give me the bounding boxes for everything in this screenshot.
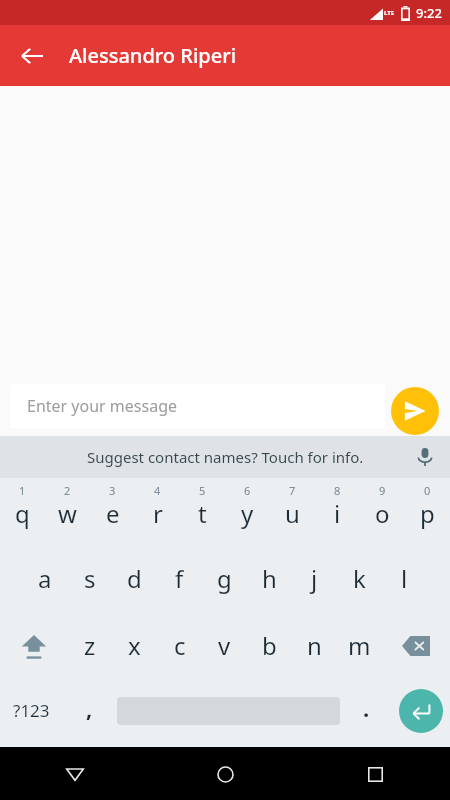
button[interactable]: , — [62, 679, 117, 742]
button[interactable]: Enter your message — [10, 384, 385, 428]
staticText: j — [311, 562, 318, 595]
button[interactable]: 4 — [135, 478, 180, 545]
staticText: b — [262, 629, 277, 662]
button[interactable]: 2 — [45, 478, 90, 545]
button[interactable]: c — [157, 612, 202, 679]
button[interactable]: ?123 — [0, 679, 62, 742]
staticText: ?123 — [13, 699, 50, 722]
button[interactable]: Send — [391, 387, 439, 435]
staticText: q — [15, 497, 30, 530]
button[interactable]: Backspace — [382, 612, 450, 679]
button[interactable]: 6 — [225, 478, 270, 545]
staticText: x — [128, 629, 141, 662]
staticText: c — [174, 629, 186, 662]
button[interactable]: h — [247, 545, 292, 612]
staticText: n — [307, 629, 322, 662]
staticText: d — [127, 562, 142, 595]
staticText: t — [198, 497, 207, 530]
button[interactable]: . — [340, 679, 392, 742]
button[interactable]: d — [112, 545, 157, 612]
button[interactable]: k — [337, 545, 382, 612]
staticText: y — [241, 497, 254, 530]
staticText: o — [375, 497, 390, 530]
button[interactable]: g — [202, 545, 247, 612]
button[interactable]: Home — [201, 750, 249, 798]
button[interactable]: z — [67, 612, 112, 679]
staticText: 5 — [199, 483, 206, 498]
button[interactable]: a — [22, 545, 67, 612]
staticText: f — [175, 562, 184, 595]
button[interactable]: 8 — [315, 478, 360, 545]
staticText: g — [217, 562, 232, 595]
staticText: e — [106, 497, 120, 530]
staticText: , — [86, 693, 93, 723]
staticText: z — [84, 629, 96, 662]
staticText: r — [153, 497, 163, 530]
button[interactable]: x — [112, 612, 157, 679]
staticText: v — [218, 629, 231, 662]
staticText: u — [285, 497, 300, 530]
button[interactable]: j — [292, 545, 337, 612]
button[interactable]: Back — [51, 750, 99, 798]
staticText: h — [262, 562, 277, 595]
staticText: 9 — [379, 483, 386, 498]
button[interactable]: 5 — [180, 478, 225, 545]
button[interactable]: s — [67, 545, 112, 612]
button[interactable]: Enter — [399, 689, 443, 733]
staticText: Alessandro Riperi — [69, 42, 237, 69]
staticText: i — [334, 497, 341, 530]
staticText: l — [401, 562, 408, 595]
button[interactable]: Recents — [351, 750, 399, 798]
staticText: 4 — [154, 483, 161, 498]
staticText: w — [58, 497, 77, 530]
staticText: k — [353, 562, 366, 595]
staticText: 6 — [244, 483, 251, 498]
staticText: 7 — [289, 483, 296, 498]
button[interactable]: 0 — [405, 478, 450, 545]
button[interactable]: l — [382, 545, 427, 612]
button[interactable]: Shift — [0, 612, 67, 679]
staticText: p — [420, 497, 435, 530]
staticText: m — [348, 629, 371, 662]
staticText: 8 — [334, 483, 341, 498]
staticText: . — [363, 693, 370, 723]
button[interactable]: m — [337, 612, 382, 679]
staticText: 9:22 — [416, 4, 442, 22]
button[interactable]: Voice input — [408, 440, 442, 474]
button[interactable]: 3 — [90, 478, 135, 545]
staticText: Enter your message — [27, 395, 178, 417]
staticText: s — [84, 562, 96, 595]
button[interactable]: 7 — [270, 478, 315, 545]
button[interactable]: Back — [8, 32, 56, 80]
button[interactable]: b — [247, 612, 292, 679]
staticText: Suggest contact names? Touch for info. — [87, 447, 364, 467]
button[interactable]: n — [292, 612, 337, 679]
button[interactable]: 1 — [0, 478, 45, 545]
button[interactable]: v — [202, 612, 247, 679]
button[interactable]: Suggest contact names? Touch for info. — [0, 436, 450, 478]
button[interactable]: f — [157, 545, 202, 612]
staticText: 2 — [64, 483, 71, 498]
staticText: LTE — [384, 9, 395, 17]
staticText: 3 — [109, 483, 116, 498]
button[interactable]: 9 — [360, 478, 405, 545]
staticText: a — [38, 562, 52, 595]
staticText: 0 — [424, 483, 431, 498]
staticText: 1 — [19, 483, 26, 498]
button[interactable]: Space — [117, 679, 340, 742]
